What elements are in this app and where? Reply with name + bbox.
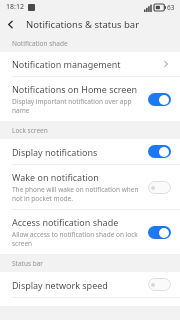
staticText: Lock screen xyxy=(12,126,48,135)
staticText: Display important notification over app … xyxy=(12,97,142,115)
staticText: Notifications on Home screen xyxy=(12,83,138,95)
staticText: Notification shade xyxy=(12,39,68,48)
staticText: 63 xyxy=(167,3,175,12)
staticText: Display notifications xyxy=(12,146,98,158)
button[interactable]: Display network speed xyxy=(0,272,180,297)
staticText: Wake on notification xyxy=(12,171,99,183)
staticText: Notifications & status bar xyxy=(26,18,140,31)
button[interactable]: Back xyxy=(0,14,20,34)
staticText: 18:12 xyxy=(6,2,24,12)
staticText: Status bar xyxy=(12,259,44,268)
button[interactable]: Access notification shade xyxy=(0,210,180,254)
staticText: Allow access to notification shade on lo… xyxy=(12,230,142,248)
button[interactable]: Notifications on Home screen xyxy=(0,77,180,121)
staticText: Notification management xyxy=(12,58,162,70)
button[interactable]: Notification management xyxy=(0,52,180,76)
button[interactable]: Display notifications xyxy=(0,139,180,164)
staticText: Display network speed xyxy=(12,279,108,291)
staticText: Access notification shade xyxy=(12,216,119,228)
staticText: The phone will wake on notification when… xyxy=(12,185,142,203)
button[interactable]: Wake on notification xyxy=(0,165,180,209)
